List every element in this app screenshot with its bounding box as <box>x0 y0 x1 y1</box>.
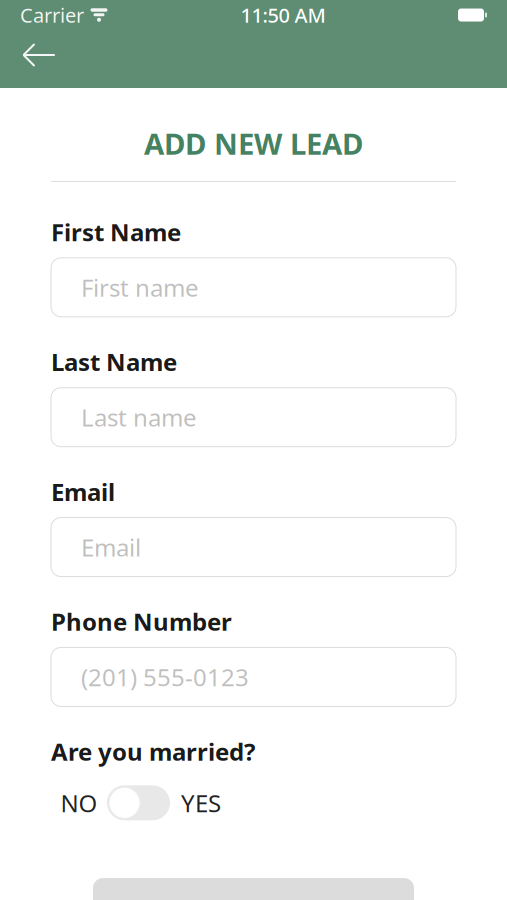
staticText: NO <box>60 787 97 819</box>
staticText: First name <box>81 271 199 303</box>
staticText: YES <box>181 787 221 819</box>
staticText: (201) 555-0123 <box>81 661 249 693</box>
staticText: ADD NEW LEAD <box>144 124 363 163</box>
staticText: 11:50 AM <box>240 2 325 28</box>
button[interactable]: Married toggle <box>107 785 170 820</box>
staticText: Email <box>81 531 141 563</box>
staticText: Last Name <box>51 346 177 378</box>
button[interactable]: Back <box>8 30 70 80</box>
staticText: Email <box>51 476 115 508</box>
staticText: Phone Number <box>51 606 232 637</box>
staticText: Last name <box>81 401 197 433</box>
staticText: Carrier <box>20 2 84 28</box>
staticText: First Name <box>51 216 181 248</box>
staticText: Are you married? <box>51 735 255 767</box>
